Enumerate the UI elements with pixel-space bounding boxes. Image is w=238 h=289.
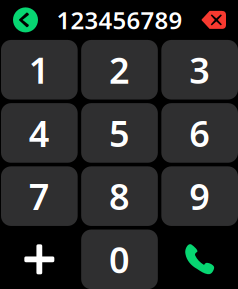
button[interactable]: 2 (81, 40, 158, 99)
staticText: 6 (189, 109, 210, 157)
button[interactable]: Back (11, 5, 40, 34)
staticText: 0 (109, 235, 130, 283)
button[interactable]: 5 (81, 103, 158, 163)
button[interactable]: 9 (161, 166, 238, 226)
button[interactable]: 1 (1, 40, 78, 99)
button[interactable]: 6 (161, 103, 238, 163)
staticText: 4 (29, 109, 50, 157)
staticText: 5 (109, 109, 130, 157)
staticText: 8 (109, 172, 130, 220)
staticText: 3 (189, 46, 210, 94)
staticText: 7 (29, 172, 50, 220)
staticText: 123456789 (56, 4, 182, 36)
button[interactable]: Call (161, 230, 238, 289)
staticText: 2 (109, 46, 130, 94)
button[interactable]: 4 (1, 103, 78, 163)
button[interactable]: 7 (1, 166, 78, 226)
button[interactable]: 0 (81, 230, 158, 289)
button[interactable]: 3 (161, 40, 238, 99)
staticText: 9 (189, 172, 210, 220)
button[interactable]: Plus (1, 230, 78, 289)
button[interactable]: Delete (199, 5, 228, 34)
staticText: 1 (29, 46, 50, 94)
button[interactable]: 8 (81, 166, 158, 226)
